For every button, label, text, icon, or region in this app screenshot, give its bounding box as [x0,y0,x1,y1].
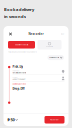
staticText: Contact [12,76,17,78]
button[interactable]: Additional services [12,82,26,86]
button[interactable]: Same Day Trip [47,55,64,60]
staticText: Place order [50,119,59,121]
button[interactable]: Close [7,31,13,37]
staticText: Clear [60,33,64,35]
staticText: Pick-Up [12,65,23,68]
staticText: +63 917 123 4567 [12,78,25,80]
staticText: Address [12,70,19,72]
staticText: in seconds [4,14,26,19]
staticText: New order [28,32,43,36]
button[interactable]: Place order [44,116,64,123]
staticText: Add delivery details [14,44,28,46]
button[interactable]: Schedule [37,40,61,49]
button[interactable]: Clear [56,31,64,37]
staticText: ₱ 50 [7,117,14,122]
button[interactable]: ₱ 50 [7,117,18,122]
staticText: Makati City, Metro Manila [12,72,26,74]
staticText: Same Day Trip [49,57,59,58]
staticText: Drop-Off [12,87,24,90]
button[interactable]: Add delivery details [8,41,35,48]
staticText: Schedule [46,45,53,47]
staticText: Additional services [12,83,26,85]
staticText: Book a delivery [4,7,34,12]
staticText: Tell us what you need delivered and wher… [8,51,37,53]
